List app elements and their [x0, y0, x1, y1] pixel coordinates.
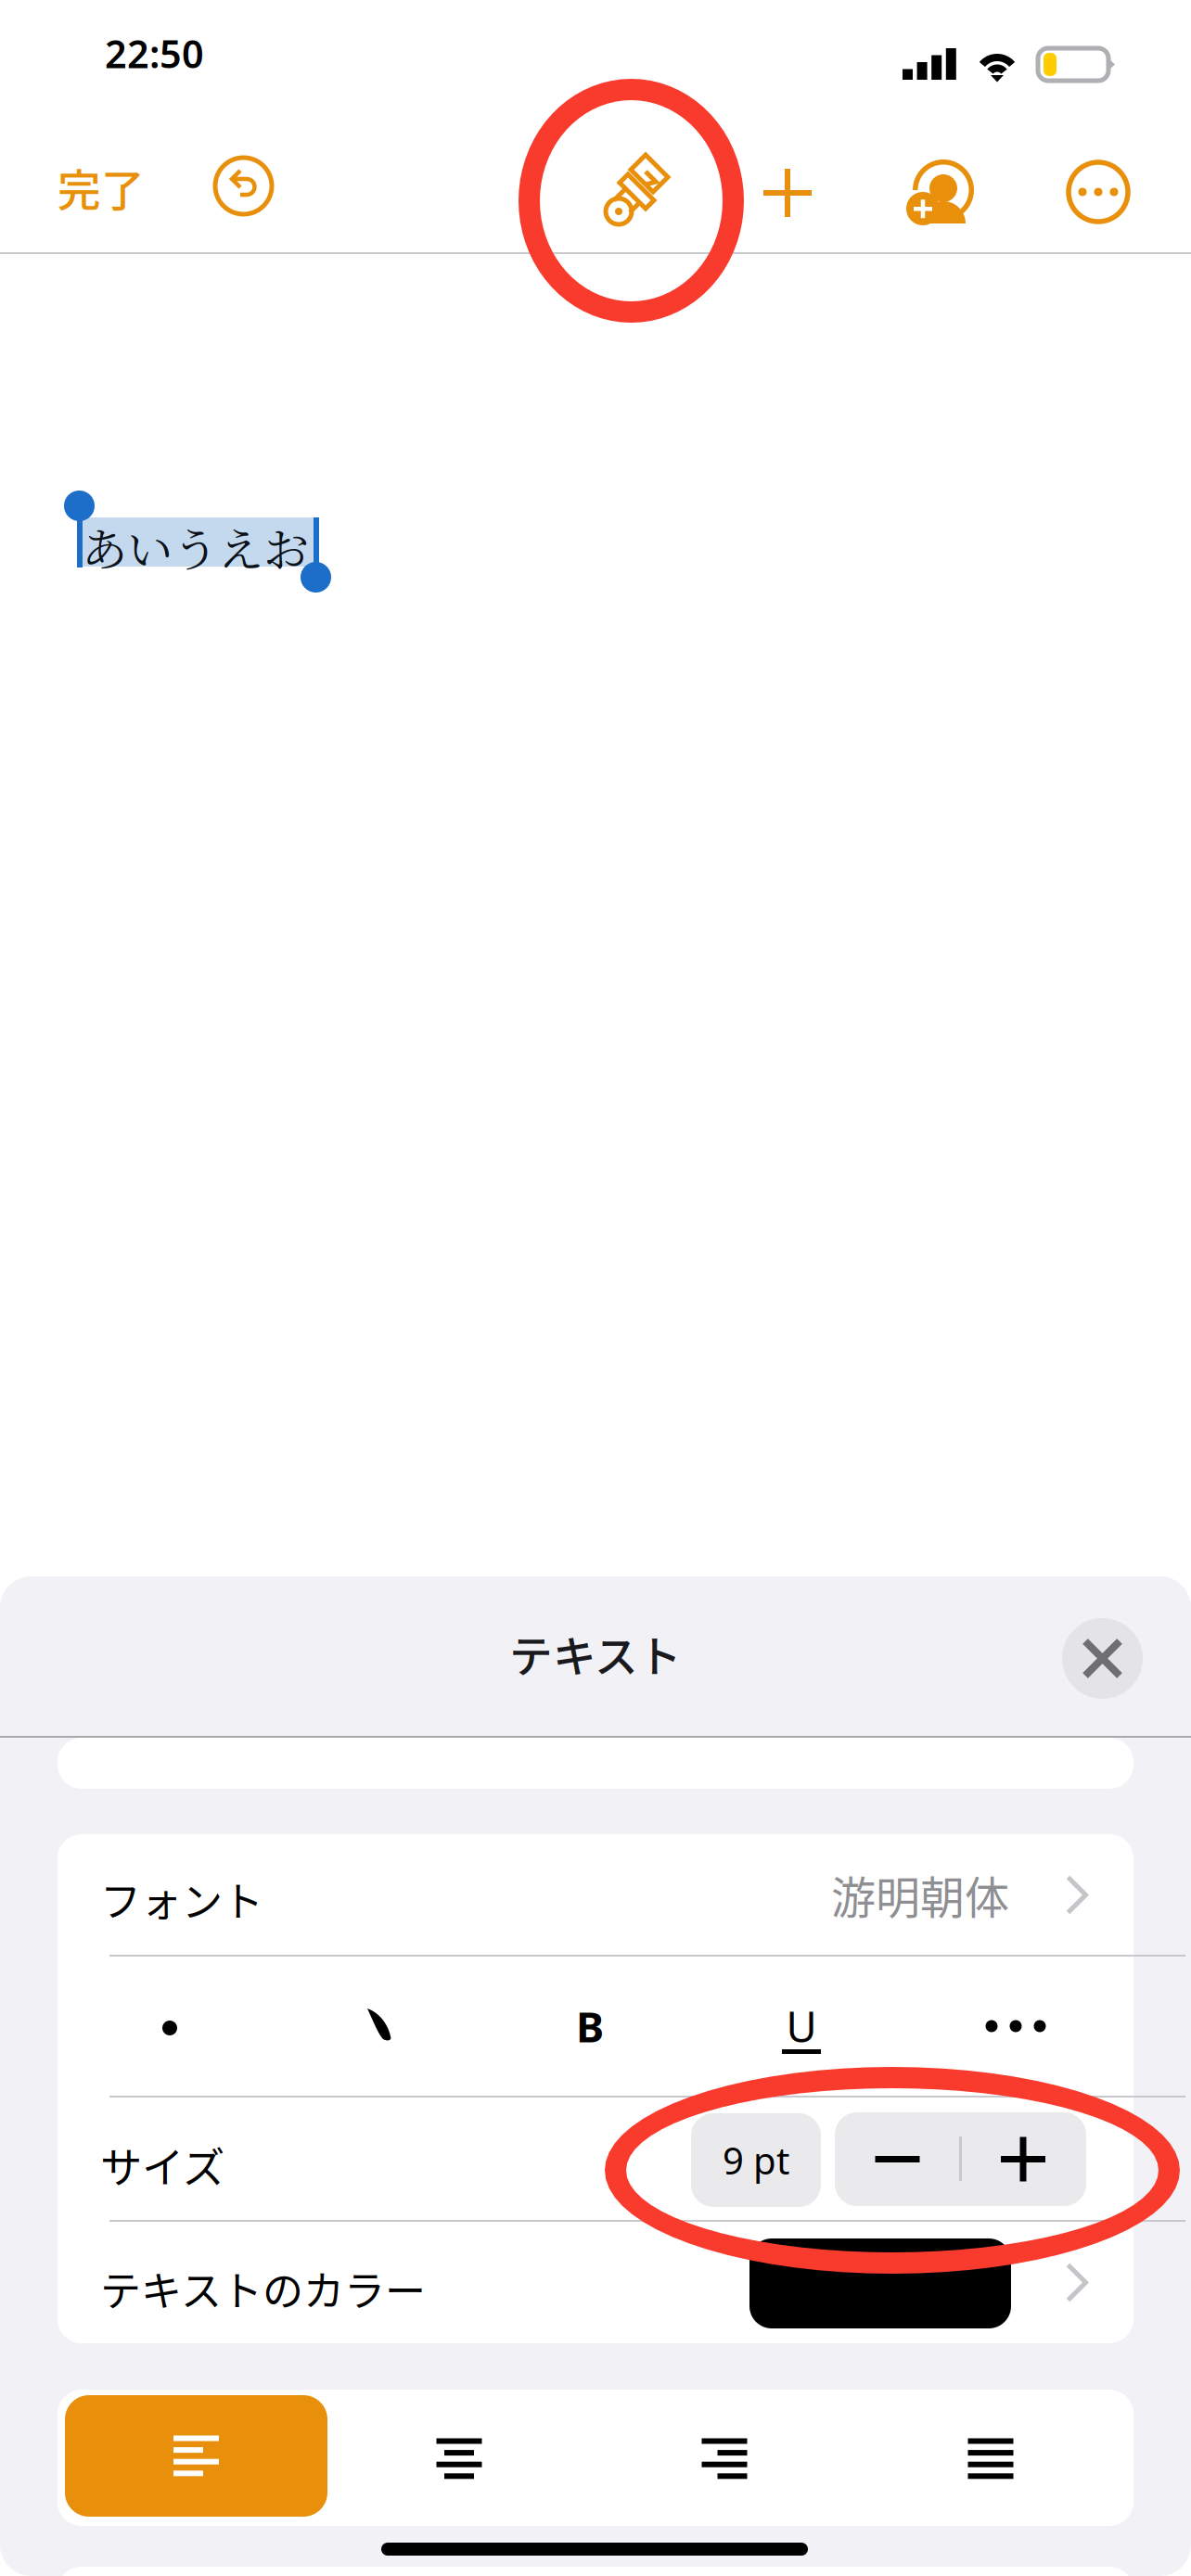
button[interactable]: Format	[599, 151, 673, 229]
button[interactable]: Underline	[727, 1957, 876, 2096]
staticText: サイズ	[100, 2135, 224, 2195]
button[interactable]: Justify	[916, 2398, 1065, 2519]
button[interactable]: フォント	[58, 1834, 1133, 1955]
button[interactable]: Bold	[516, 1957, 664, 2096]
button[interactable]: Increase size	[960, 2112, 1086, 2206]
button[interactable]: Decrease size	[835, 2112, 960, 2206]
staticText: フォント	[100, 1869, 263, 1928]
staticText: 9 pt	[723, 2135, 789, 2185]
staticText: テキスト	[509, 1622, 682, 1685]
button[interactable]: Emphasis mark	[305, 1957, 454, 2096]
staticText: 游明朝体	[831, 1862, 1009, 1927]
staticText: 22:50	[105, 28, 204, 79]
button[interactable]: Undo	[215, 158, 272, 214]
button[interactable]: Emphasis dot	[94, 1957, 242, 2096]
button[interactable]: Add collaborator	[903, 159, 980, 225]
staticText: あいうえお	[82, 514, 309, 579]
button[interactable]: Close	[1062, 1618, 1143, 1699]
staticText: テキストのカラー	[100, 2259, 426, 2318]
staticText: 完了	[58, 156, 145, 219]
button[interactable]: More text styles	[941, 1957, 1090, 2096]
button[interactable]: More options	[1069, 162, 1128, 222]
button[interactable]: 完了	[58, 152, 178, 223]
button[interactable]: Font size 9 points	[691, 2113, 821, 2207]
staticText: B	[576, 1998, 604, 2054]
button[interactable]: Align center	[385, 2398, 533, 2519]
button[interactable]: Insert	[763, 169, 812, 217]
button[interactable]: Align right	[650, 2398, 799, 2519]
staticText: U	[786, 1998, 817, 2054]
button[interactable]: Align left	[65, 2395, 327, 2517]
button[interactable]: テキストのカラー	[58, 2222, 1133, 2343]
